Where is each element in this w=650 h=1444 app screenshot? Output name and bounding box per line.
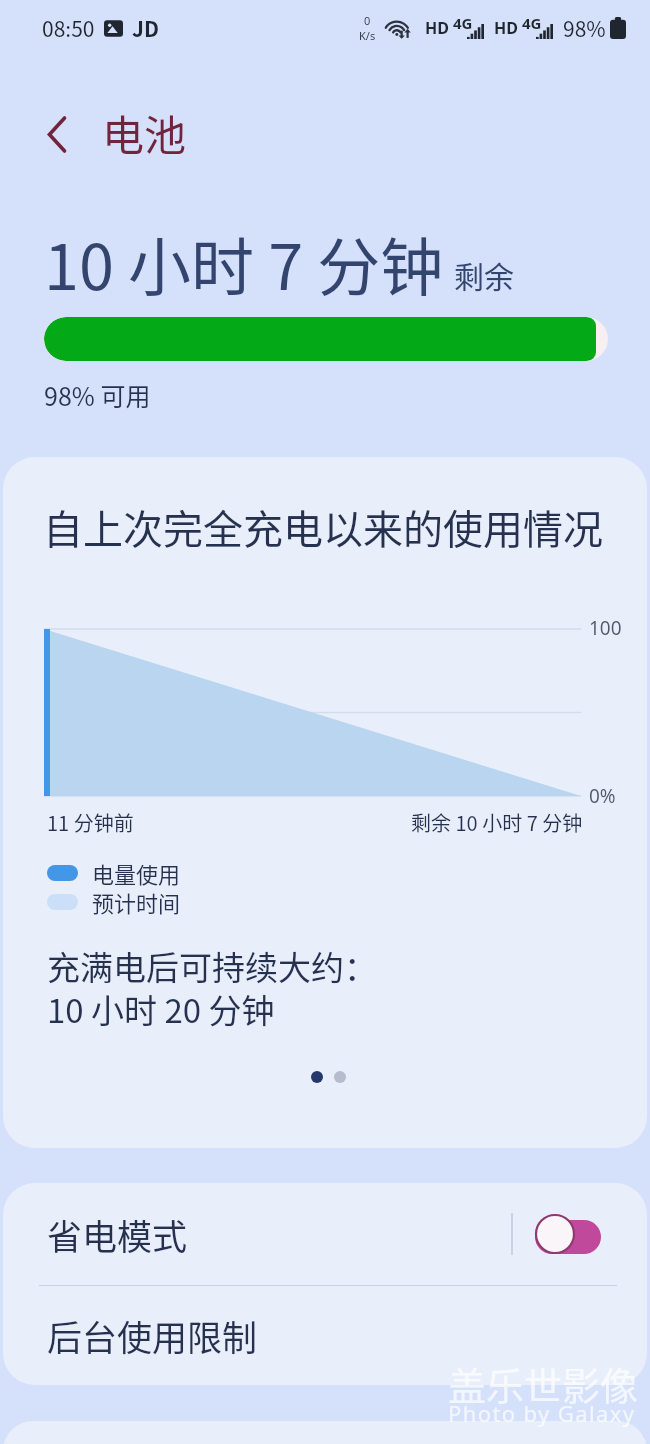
staticText: 0 <box>364 13 371 28</box>
staticText: 自上次完全充电以来的使用情况 <box>43 498 603 556</box>
button[interactable]: Back <box>30 108 78 156</box>
staticText: 98% 可用 <box>44 377 151 413</box>
staticText: 电池 <box>102 102 187 163</box>
button[interactable]: 省电模式 <box>3 1183 647 1285</box>
staticText: 08:50 <box>42 13 95 43</box>
staticText: 10 小时 7 分钟 <box>44 217 444 308</box>
staticText: 剩余 <box>454 253 514 296</box>
staticText: 省电模式 <box>47 1209 188 1260</box>
staticText: JD <box>132 13 159 43</box>
staticText: 盖乐世影像 <box>448 1356 639 1411</box>
staticText: HD <box>425 17 449 39</box>
staticText: Photo by Galaxy <box>448 1398 636 1428</box>
staticText: HD <box>494 17 518 39</box>
staticText: 100 <box>589 615 622 641</box>
staticText: 0% <box>589 783 616 809</box>
button[interactable]: 后台使用限制 <box>3 1286 647 1385</box>
staticText: 10 小时 20 分钟 <box>47 985 275 1033</box>
staticText: 4G <box>522 13 542 33</box>
staticText: 98% <box>563 13 606 43</box>
staticText: 充满电后可持续大约： <box>47 942 377 990</box>
staticText: 预计时间 <box>92 886 181 918</box>
staticText: K/s <box>359 28 376 43</box>
staticText: 剩余 10 小时 7 分钟 <box>411 808 583 837</box>
button[interactable]: Power saving mode toggle <box>535 1214 603 1254</box>
staticText: 电量使用 <box>92 857 181 889</box>
staticText: 后台使用限制 <box>47 1310 258 1361</box>
staticText: 4G <box>453 13 473 33</box>
staticText: 11 分钟前 <box>47 808 134 837</box>
